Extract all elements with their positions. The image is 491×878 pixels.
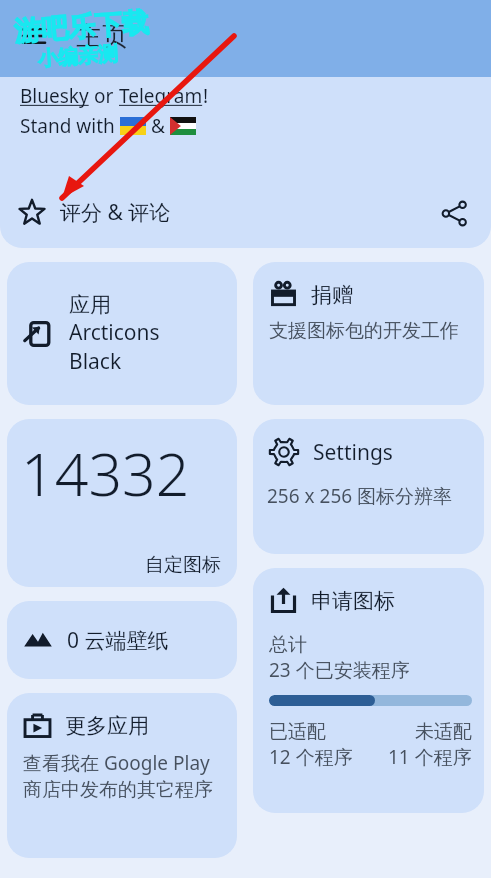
- staticText: 0 云端壁纸: [67, 626, 169, 655]
- staticText: !: [203, 83, 209, 109]
- staticText: 申请图标: [311, 588, 395, 614]
- staticText: 未适配: [415, 720, 472, 744]
- staticText: 自定图标: [21, 553, 221, 577]
- staticText: 256 x 256 图标分辨率: [267, 483, 453, 509]
- staticText: 评分 & 评论: [60, 198, 171, 227]
- staticText: 已适配: [269, 720, 326, 744]
- staticText: 14332: [21, 433, 190, 513]
- staticText: 总计: [269, 633, 307, 657]
- staticText: Arcticons: [69, 318, 160, 347]
- staticText: 捐赠: [311, 282, 353, 308]
- button[interactable]: Settings: [253, 419, 484, 554]
- staticText: 应用: [69, 292, 111, 318]
- button[interactable]: Telegram: [119, 83, 203, 109]
- staticText: 更多应用: [65, 713, 149, 739]
- staticText: or: [89, 83, 119, 109]
- button[interactable]: 14332: [7, 419, 237, 587]
- staticText: 游吧乐下载: [13, 5, 150, 49]
- staticText: 12 个程序: [269, 744, 353, 770]
- button[interactable]: 0 云端壁纸: [7, 601, 237, 679]
- staticText: 23 个已安装程序: [269, 657, 410, 683]
- button[interactable]: 申请图标: [253, 568, 484, 813]
- button[interactable]: Share: [437, 196, 471, 230]
- staticText: 主页: [76, 20, 128, 53]
- button[interactable]: Open navigation menu: [14, 16, 54, 56]
- button[interactable]: 更多应用: [7, 693, 237, 858]
- staticText: &: [146, 113, 170, 139]
- staticText: Settings: [313, 438, 393, 467]
- staticText: 查看我在 Google Play 商店中发布的其它程序: [23, 750, 225, 802]
- staticText: 小编亲测: [37, 41, 119, 72]
- button[interactable]: 应用: [7, 262, 237, 405]
- staticText: Stand with: [20, 113, 120, 139]
- button[interactable]: 评分 & 评论: [0, 177, 491, 248]
- staticText: 支援图标包的开发工作: [269, 319, 459, 343]
- staticText: 11 个程序: [388, 744, 472, 770]
- staticText: Black: [69, 347, 122, 376]
- button[interactable]: Bluesky: [20, 83, 89, 109]
- button[interactable]: 捐赠: [253, 262, 484, 405]
